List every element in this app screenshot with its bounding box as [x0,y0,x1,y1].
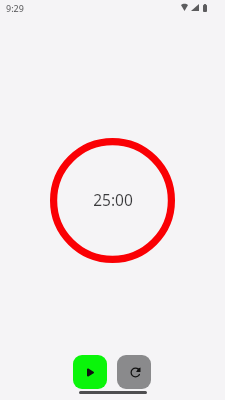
button[interactable]: Start timer [73,355,107,389]
button[interactable]: Reset timer [117,355,151,389]
staticText: 9:29 [6,2,24,14]
staticText: 25:00 [93,189,133,210]
